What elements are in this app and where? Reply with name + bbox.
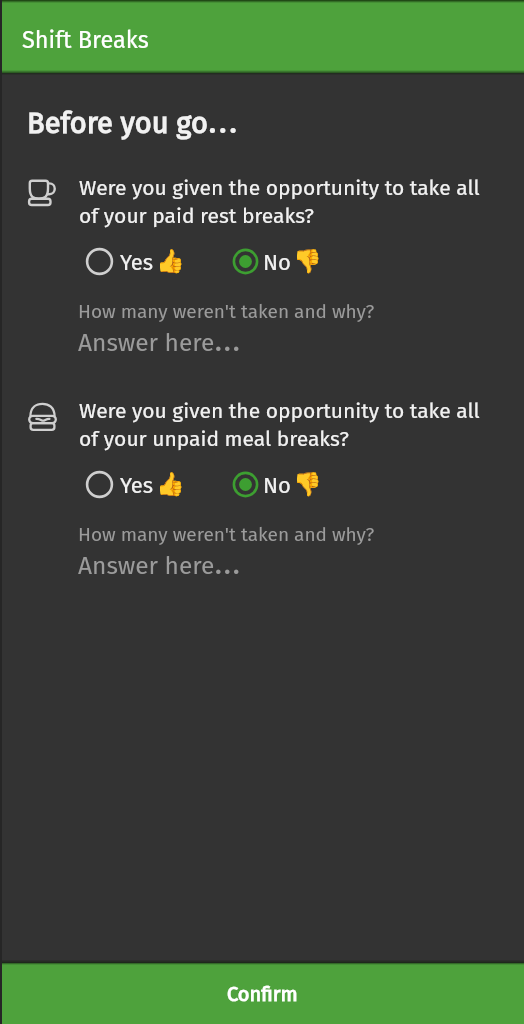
staticText: Were you given the opportunity to take a…: [79, 398, 480, 451]
button[interactable]: Confirm: [0, 963, 524, 1024]
button[interactable]: No: [232, 248, 322, 275]
staticText: How many weren't taken and why?: [78, 300, 375, 323]
staticText: 👎: [293, 471, 322, 498]
staticText: Answer here…: [78, 327, 241, 358]
staticText: Shift Breaks: [22, 26, 149, 54]
other: Meal break: [28, 402, 58, 431]
staticText: Were you given the opportunity to take a…: [79, 175, 480, 228]
button[interactable]: No: [232, 471, 322, 498]
staticText: How many weren't taken and why?: [78, 523, 375, 546]
button[interactable]: Yes: [86, 248, 185, 275]
other: Rest break: [28, 179, 58, 207]
staticText: Yes: [120, 472, 154, 498]
staticText: Answer here…: [78, 550, 241, 581]
staticText: Yes: [120, 249, 154, 275]
button[interactable]: Answer field: [78, 523, 479, 581]
staticText: No: [263, 472, 291, 498]
staticText: 👍: [156, 248, 185, 275]
staticText: No: [263, 249, 291, 275]
button[interactable]: Answer field: [78, 300, 479, 358]
button[interactable]: Yes: [86, 471, 185, 498]
staticText: Before you go…: [27, 105, 238, 141]
staticText: 👎: [293, 248, 322, 275]
staticText: Confirm: [227, 982, 298, 1006]
staticText: 👍: [156, 471, 185, 498]
